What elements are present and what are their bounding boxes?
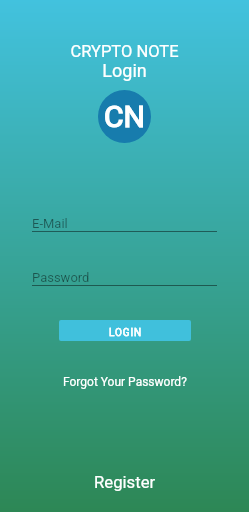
staticText: Password bbox=[32, 270, 90, 285]
staticText: LOGIN bbox=[109, 327, 143, 339]
staticText: Forgot Your Password? bbox=[63, 375, 187, 389]
staticText: Login bbox=[102, 60, 147, 81]
button[interactable]: LOGIN bbox=[59, 320, 191, 341]
other: Crypto Note logo bbox=[98, 90, 151, 143]
staticText: CN bbox=[104, 99, 145, 134]
button[interactable]: Password bbox=[32, 263, 217, 293]
button[interactable]: Forgot Your Password? bbox=[55, 373, 195, 391]
button[interactable]: E-Mail bbox=[32, 209, 217, 239]
staticText: CRYPTO NOTE bbox=[70, 42, 179, 61]
staticText: Register bbox=[94, 473, 156, 493]
button[interactable]: Register bbox=[0, 467, 249, 499]
staticText: E-Mail bbox=[32, 216, 68, 231]
staticText: CN bbox=[104, 99, 145, 134]
staticText: LOGIN bbox=[109, 327, 143, 339]
